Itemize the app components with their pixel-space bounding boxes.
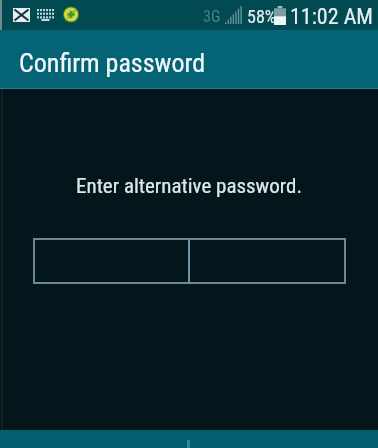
other: New mail: [13, 8, 30, 22]
other: Keyboard: [37, 9, 54, 21]
staticText: 3G: [203, 7, 221, 26]
staticText: 58%: [247, 6, 277, 27]
staticText: 11:02 AM: [290, 4, 373, 30]
other: Security status: [63, 6, 79, 23]
staticText: Confirm password: [19, 48, 206, 78]
other: Signal strength: [225, 6, 243, 24]
staticText: Enter alternative password.: [76, 174, 302, 199]
other: Battery 58 percent: [274, 6, 286, 25]
button[interactable]: [33, 238, 346, 284]
